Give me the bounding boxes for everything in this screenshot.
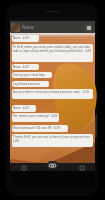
staticText: Nana 4:29 [13, 106, 29, 110]
button[interactable]: Profile photo [11, 23, 20, 32]
staticText: Nana 4:29 [13, 36, 29, 40]
button[interactable]: Are you able to check your blood pressur… [12, 89, 93, 99]
button[interactable]: Log blood pressure 4:29 [12, 81, 49, 87]
button[interactable]: Nana 4:29 [12, 35, 39, 42]
button[interactable]: OK, what is your reading? 4:29 [12, 113, 59, 122]
staticText: Storing your meal logs 4:29 [13, 73, 51, 77]
button[interactable]: Profile [78, 164, 85, 171]
staticText: Log blood pressure 4:29 [13, 82, 48, 86]
button[interactable]: Menu [85, 24, 92, 31]
staticText: Blood pressure 130 over 85 4:29 [13, 126, 60, 130]
button[interactable]: Storing your meal logs 4:29 [12, 72, 52, 78]
button[interactable]: Thanks Kirill, you can see a chart of yo… [12, 134, 93, 147]
button[interactable]: Nana 4:29 [12, 64, 39, 70]
button[interactable]: Take a photo [47, 161, 58, 169]
staticText: OK, what is your reading? 4:29 [13, 114, 58, 118]
button[interactable]: Nana 4:29 [12, 105, 36, 112]
staticText: Are you able to check your blood pressur… [13, 90, 89, 94]
staticText: Nana 4:29 [13, 65, 29, 69]
staticText: Thanks Kirill, you can see a chart of yo… [13, 135, 92, 143]
button[interactable]: Hi Kirill, when you snap your meals toda… [12, 44, 93, 62]
button[interactable]: Blood pressure 130 over 85 4:29 [12, 125, 68, 132]
staticText: Hi Kirill, when you snap your meals toda… [13, 45, 92, 53]
staticText: Nana [22, 24, 34, 30]
button[interactable]: Chats [20, 164, 27, 171]
